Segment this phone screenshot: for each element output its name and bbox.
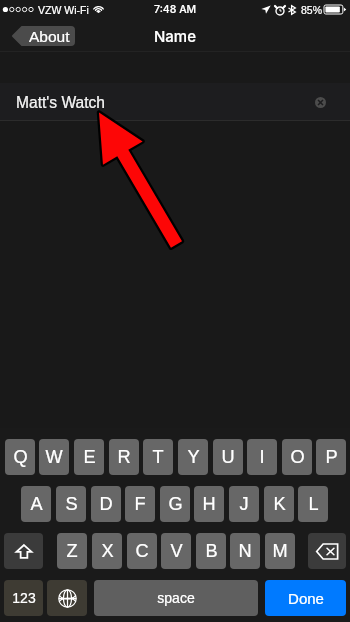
staticText: Done (288, 590, 324, 607)
staticText: VZW Wi-Fi (38, 4, 89, 16)
button[interactable]: Clear text (315, 97, 326, 108)
button[interactable]: I (247, 439, 277, 475)
staticText: C (135, 541, 149, 561)
button[interactable]: Matt's Watch (0, 83, 350, 121)
button[interactable]: Backspace (308, 533, 346, 569)
staticText: M (272, 541, 288, 561)
staticText: R (117, 447, 131, 467)
staticText: D (99, 494, 113, 514)
staticText: A (30, 494, 43, 514)
staticText: 123 (12, 590, 36, 606)
staticText: Z (66, 541, 78, 561)
button[interactable]: O (282, 439, 312, 475)
button[interactable]: H (194, 486, 224, 522)
staticText: W (45, 447, 63, 467)
staticText: J (239, 494, 249, 514)
button[interactable]: Q (5, 439, 35, 475)
button[interactable]: N (230, 533, 260, 569)
button[interactable]: Z (57, 533, 87, 569)
button[interactable]: B (196, 533, 226, 569)
staticText: G (168, 494, 183, 514)
staticText: E (83, 447, 96, 467)
button[interactable]: Done (265, 580, 346, 616)
button[interactable]: 123 (4, 580, 43, 616)
button[interactable]: T (143, 439, 173, 475)
staticText: X (101, 541, 114, 561)
button[interactable]: U (213, 439, 243, 475)
staticText: P (325, 447, 338, 467)
button[interactable]: G (160, 486, 190, 522)
button[interactable]: S (56, 486, 86, 522)
staticText: Name (154, 27, 196, 45)
button[interactable]: R (109, 439, 139, 475)
button[interactable]: P (316, 439, 346, 475)
staticText: T (152, 447, 164, 467)
button[interactable]: Y (178, 439, 208, 475)
button[interactable]: V (161, 533, 191, 569)
button[interactable]: A (21, 486, 51, 522)
staticText: B (205, 541, 218, 561)
button[interactable]: E (74, 439, 104, 475)
button[interactable]: X (92, 533, 122, 569)
staticText: Q (13, 447, 28, 467)
button[interactable]: space (94, 580, 258, 616)
staticText: O (290, 447, 305, 467)
button[interactable]: J (229, 486, 259, 522)
staticText: About (29, 28, 70, 45)
button[interactable]: Change keyboard (47, 580, 87, 616)
staticText: 7:48 AM (154, 3, 197, 16)
staticText: V (170, 541, 183, 561)
staticText: F (134, 494, 146, 514)
button[interactable]: D (91, 486, 121, 522)
button[interactable]: Shift (4, 533, 43, 569)
staticText: Y (187, 447, 200, 467)
staticText: 85% (301, 4, 323, 16)
staticText: L (308, 494, 319, 514)
staticText: I (259, 447, 265, 467)
button[interactable]: K (264, 486, 294, 522)
button[interactable]: L (298, 486, 328, 522)
button[interactable]: Back to About (11, 26, 75, 46)
staticText: H (202, 494, 216, 514)
button[interactable]: C (127, 533, 157, 569)
staticText: N (238, 541, 252, 561)
button[interactable]: F (125, 486, 155, 522)
staticText: U (221, 447, 235, 467)
staticText: S (65, 494, 78, 514)
staticText: space (157, 590, 195, 606)
staticText: Matt's Watch (16, 94, 106, 111)
button[interactable]: W (39, 439, 69, 475)
button[interactable]: M (265, 533, 295, 569)
staticText: K (273, 494, 286, 514)
